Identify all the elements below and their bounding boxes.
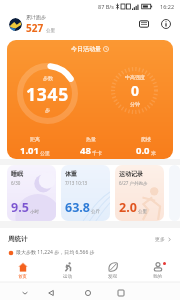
staticText: 87 B/s (98, 3, 114, 10)
staticText: 1345 (26, 82, 69, 106)
staticText: 63.8 (65, 199, 90, 216)
button[interactable]: 距离 (7, 136, 63, 157)
staticText: 累计跑步 (26, 14, 46, 20)
button[interactable]: 爬楼 (118, 136, 173, 157)
staticText: 7/13 10:13 (65, 180, 88, 186)
staticText: 首页 (18, 274, 27, 280)
button[interactable]: Recent apps (115, 287, 127, 299)
staticText: 运动 (63, 274, 72, 280)
button[interactable]: Information (158, 16, 174, 32)
staticText: 1.01 (20, 144, 39, 157)
staticText: 热量 (86, 136, 96, 142)
button[interactable]: 周统计 (8, 235, 172, 243)
button[interactable]: 今日活动量 (7, 40, 173, 159)
staticText: 千卡 (92, 150, 102, 156)
staticText: 中高强度 (125, 74, 145, 80)
button[interactable]: 运动记录 (115, 165, 164, 221)
staticText: 16:22 (160, 3, 175, 10)
staticText: 发现 (108, 274, 117, 280)
button[interactable]: 首页 (0, 256, 45, 282)
staticText: 今日活动量 (71, 45, 101, 53)
staticText: 体重 (65, 170, 77, 178)
staticText: 公斤 (91, 209, 100, 215)
staticText: 距离 (30, 136, 40, 142)
button[interactable]: Profile (9, 18, 22, 31)
button[interactable]: Hide keyboard (19, 287, 31, 299)
staticText: 分钟 (130, 101, 140, 107)
button[interactable]: Back (45, 287, 57, 299)
staticText: 0.0 (136, 144, 150, 157)
staticText: 周统计 (8, 235, 28, 243)
staticText: 最大步数 11,224 步，日均 6,566 步 (16, 249, 95, 256)
staticText: 48 (80, 144, 91, 157)
staticText: 2.0 (119, 199, 137, 216)
staticText: 公里 (138, 209, 147, 215)
button[interactable]: 睡眠 (7, 165, 56, 221)
staticText: 睡眠 (11, 170, 23, 178)
button[interactable]: 体重 (61, 165, 110, 221)
staticText: 公里 (40, 150, 50, 156)
staticText: 公里 (46, 28, 55, 34)
staticText: 爬楼 (141, 136, 151, 142)
staticText: 步数 (43, 75, 53, 81)
staticText: 更多 (155, 236, 165, 242)
button[interactable]: 热量 (63, 136, 118, 157)
staticText: 6/30 (11, 180, 21, 186)
staticText: 我的 (153, 274, 162, 280)
staticText: 9.5 (11, 199, 29, 216)
staticText: 0 (131, 81, 140, 100)
button[interactable]: 运动 (45, 256, 90, 282)
staticText: 步 (45, 107, 50, 113)
button[interactable]: Home (82, 287, 94, 299)
staticText: 运动记录 (119, 170, 143, 178)
staticText: 527 (26, 21, 44, 35)
button[interactable]: Devices (136, 16, 152, 32)
button[interactable]: 发现 (90, 256, 135, 282)
staticText: 6/27 户外跑步 (119, 180, 148, 186)
staticText: 米 (151, 150, 156, 156)
staticText: 小时 (30, 209, 39, 215)
button[interactable]: 我的 (135, 256, 180, 282)
